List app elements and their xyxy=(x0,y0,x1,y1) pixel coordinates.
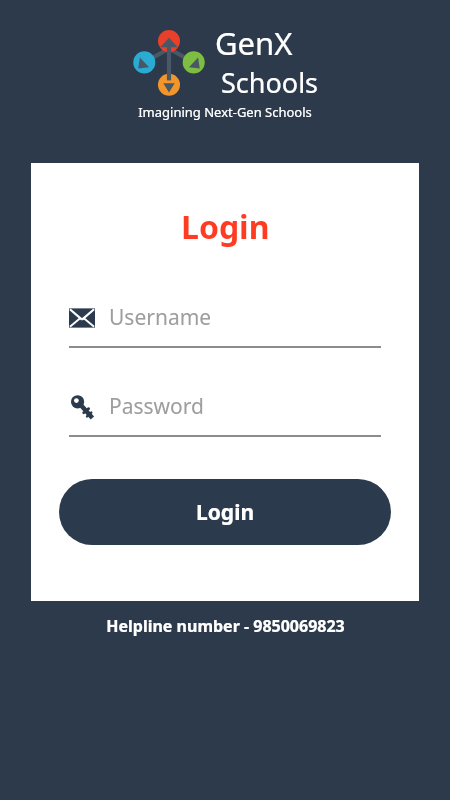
staticText: Login xyxy=(196,498,255,527)
staticText: Password xyxy=(109,392,204,421)
staticText: Helpline number - 9850069823 xyxy=(106,615,345,637)
staticText: Schools xyxy=(221,64,319,101)
staticText: GenX xyxy=(215,22,293,64)
button[interactable]: Username xyxy=(69,303,381,348)
button[interactable]: Password xyxy=(69,392,381,437)
staticText: Login xyxy=(181,205,270,249)
other: Password xyxy=(69,394,95,420)
other: Username xyxy=(69,305,95,331)
staticText: Username xyxy=(109,303,212,332)
staticText: Imagining Next-Gen Schools xyxy=(138,103,312,121)
button[interactable]: Login xyxy=(59,479,391,545)
